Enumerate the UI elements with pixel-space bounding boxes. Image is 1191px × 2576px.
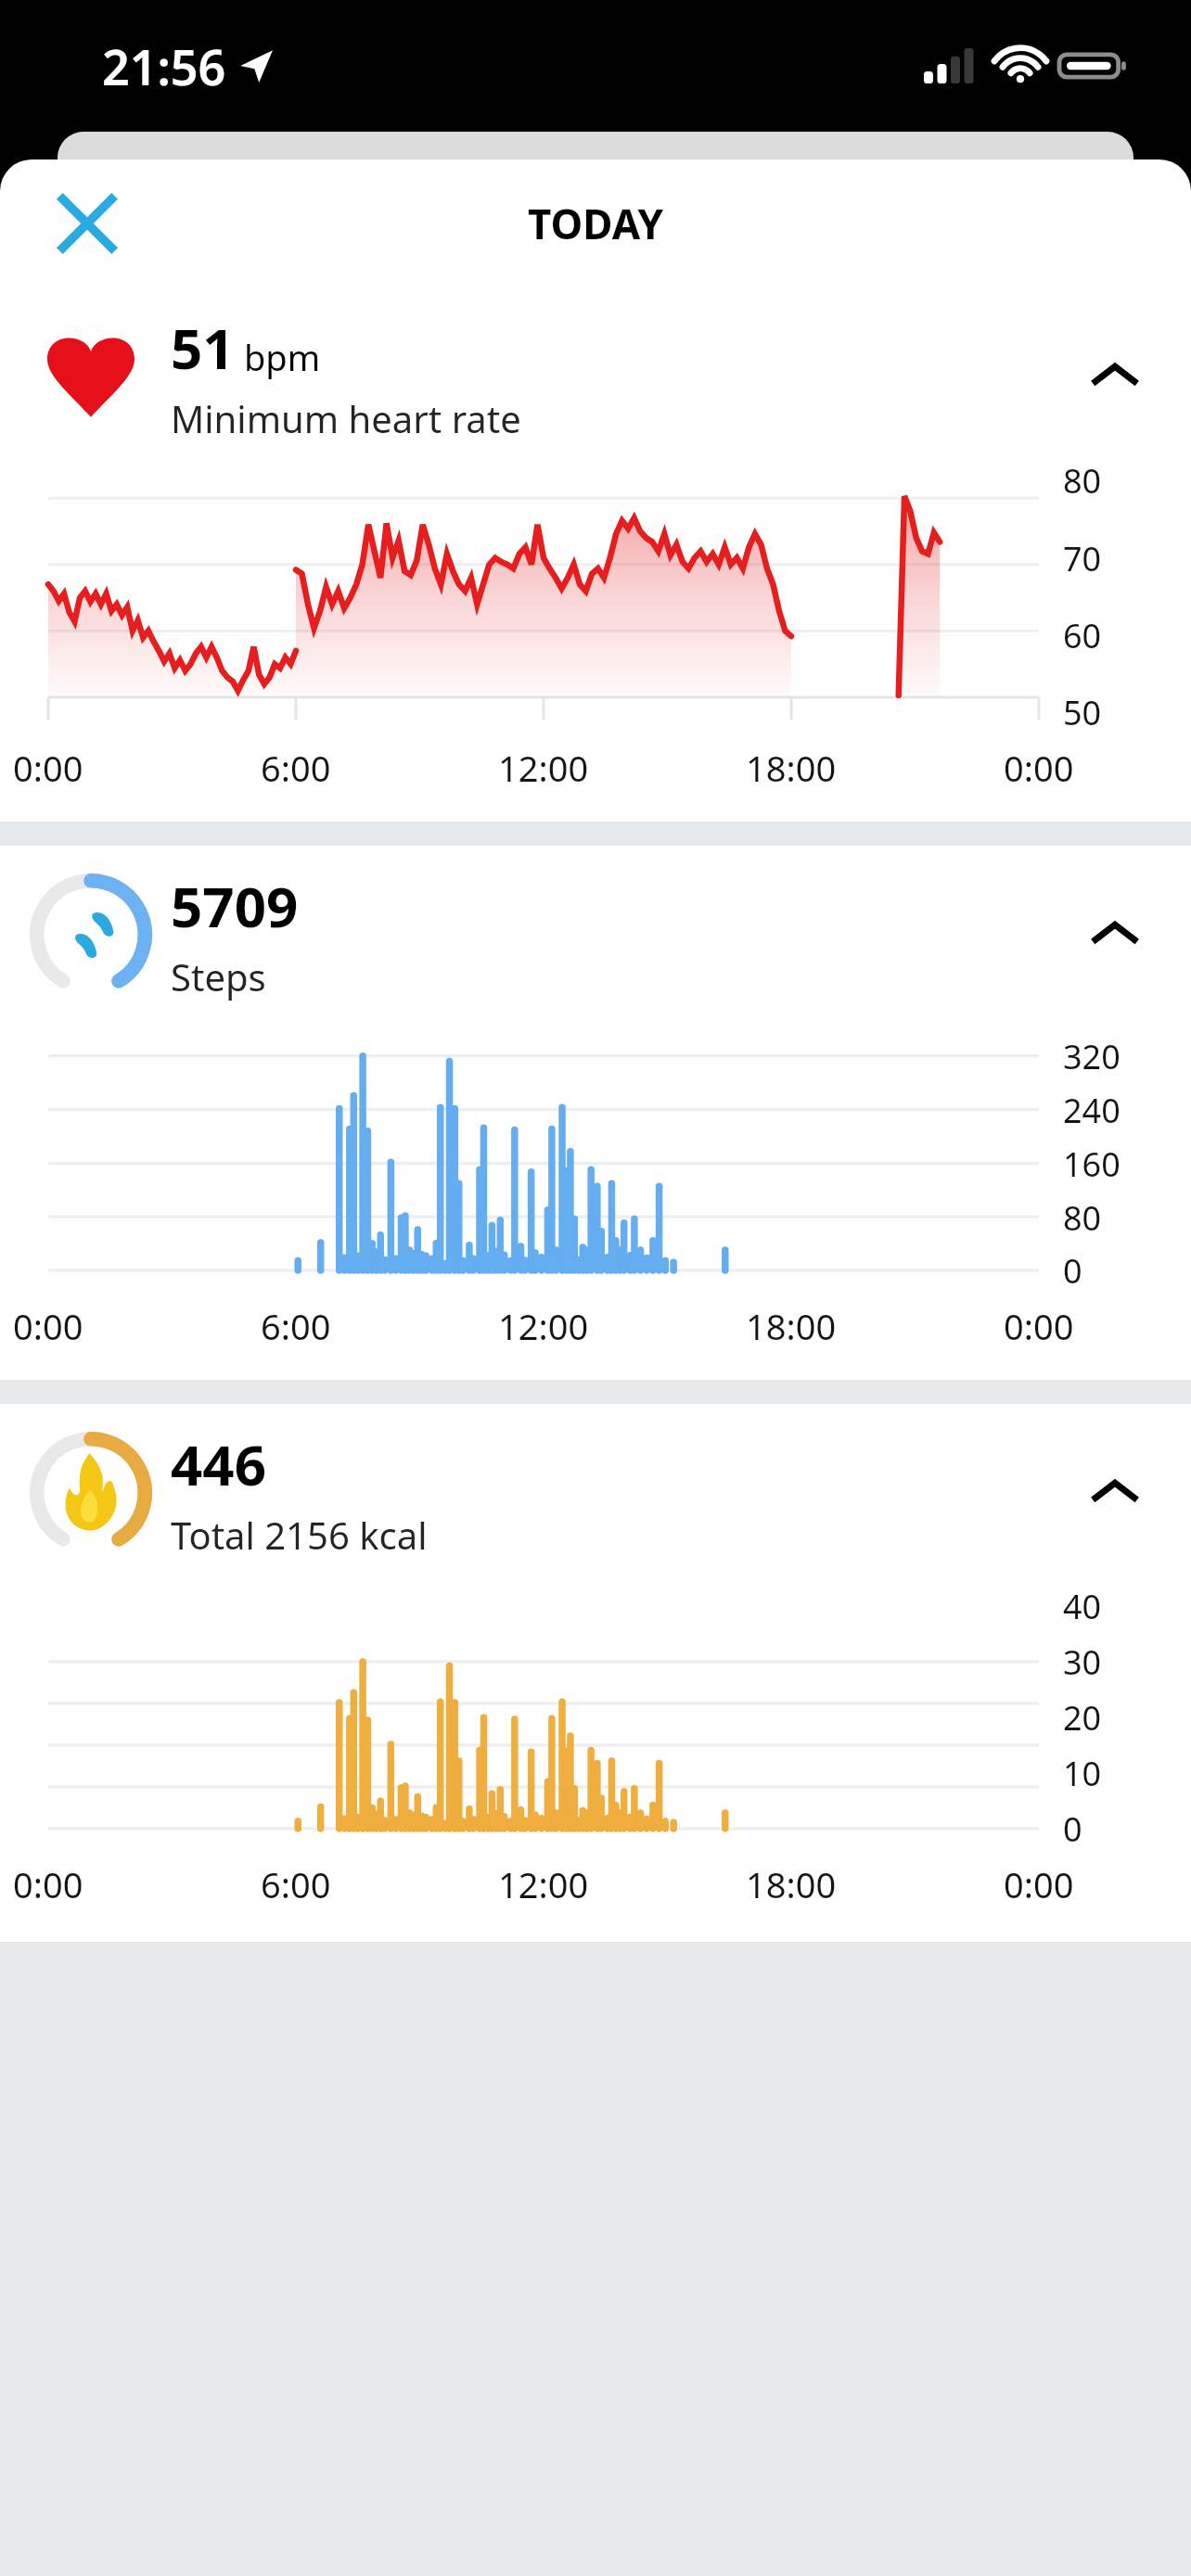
staticText: 446 [171, 1426, 266, 1502]
staticText: 160 [1063, 1141, 1121, 1187]
staticText: 20 [1063, 1695, 1102, 1741]
staticText: Total 2156 kcal [171, 1510, 428, 1560]
staticText: 320 [1063, 1034, 1121, 1079]
button[interactable]: 446 [0, 1404, 1191, 1582]
staticText: 0:00 [13, 1302, 83, 1350]
staticText: 40 [1063, 1584, 1102, 1629]
staticText: 5709 [171, 868, 299, 944]
button[interactable]: Close [35, 172, 139, 275]
staticText: 80 [1063, 458, 1102, 504]
staticText: 80 [1063, 1195, 1102, 1241]
button[interactable]: Collapse section [1059, 879, 1171, 990]
staticText: TODAY [528, 196, 663, 251]
button[interactable]: Collapse section [1059, 321, 1171, 432]
staticText: 50 [1063, 690, 1102, 735]
staticText: 12:00 [498, 1302, 589, 1350]
staticText: 60 [1063, 613, 1102, 658]
staticText: 18:00 [746, 1860, 837, 1908]
staticText: Steps [171, 951, 266, 1001]
staticText: 21:56 [102, 33, 226, 99]
staticText: 30 [1063, 1639, 1102, 1685]
staticText: 0:00 [13, 744, 83, 792]
staticText: 6:00 [261, 1860, 331, 1908]
staticText: 0:00 [1004, 744, 1074, 792]
staticText: 12:00 [498, 1860, 589, 1908]
button[interactable]: 5709 [0, 846, 1191, 1024]
staticText: bpm [244, 333, 321, 381]
staticText: 0:00 [1004, 1302, 1074, 1350]
staticText: 18:00 [746, 744, 837, 792]
staticText: 18:00 [746, 1302, 837, 1350]
staticText: 0:00 [13, 1860, 83, 1908]
staticText: 0 [1063, 1806, 1082, 1852]
staticText: 10 [1063, 1751, 1102, 1796]
staticText: 6:00 [261, 744, 331, 792]
staticText: 0:00 [1004, 1860, 1074, 1908]
staticText: 240 [1063, 1088, 1121, 1133]
button[interactable]: 51 [0, 287, 1191, 465]
staticText: 12:00 [498, 744, 589, 792]
staticText: 6:00 [261, 1302, 331, 1350]
staticText: 51 [171, 310, 235, 386]
button[interactable]: Collapse section [1059, 1437, 1171, 1549]
staticText: 70 [1063, 536, 1102, 581]
staticText: 0 [1063, 1248, 1082, 1294]
staticText: Minimum heart rate [171, 393, 521, 443]
